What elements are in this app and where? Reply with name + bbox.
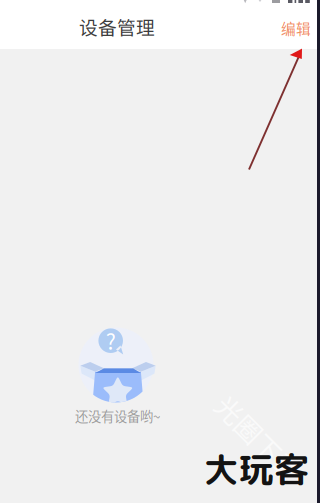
- button[interactable]: 编辑: [274, 12, 318, 44]
- staticText: 大玩客: [204, 445, 309, 493]
- staticText: ?: [106, 325, 116, 356]
- staticText: 光圈下载: [205, 419, 313, 457]
- staticText: 编辑: [281, 17, 311, 39]
- staticText: 设备管理: [79, 13, 155, 40]
- staticText: 还没有设备哟~: [75, 406, 160, 425]
